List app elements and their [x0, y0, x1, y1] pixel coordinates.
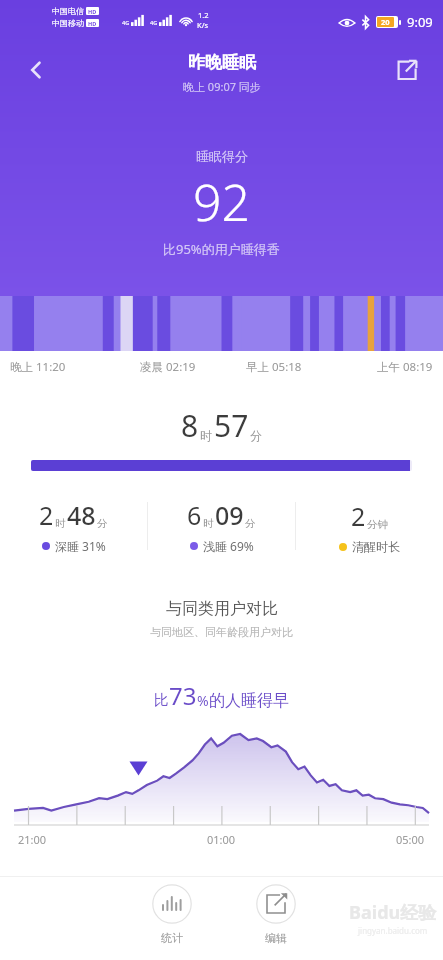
button[interactable]: Share	[385, 48, 429, 92]
staticText: 92	[193, 168, 251, 236]
staticText: 57	[214, 405, 249, 446]
staticText: 统计	[161, 931, 183, 945]
staticText: 4G	[150, 19, 158, 26]
staticText: Baidu经验	[349, 900, 437, 925]
staticText: 中国移动	[52, 18, 84, 28]
staticText: %	[197, 691, 209, 710]
staticText: 8	[181, 405, 199, 446]
staticText: 4G	[122, 19, 130, 26]
button[interactable]: Back	[14, 48, 58, 92]
staticText: 凌晨 02:19	[140, 359, 196, 375]
staticText: 比	[154, 691, 169, 710]
staticText: 清醒时长	[352, 539, 400, 554]
staticText: 深睡 31%	[55, 538, 106, 554]
staticText: 时	[203, 517, 214, 530]
staticText: 分	[97, 517, 108, 530]
staticText: 晚上 09:07 同步	[183, 79, 261, 94]
staticText: HD	[88, 8, 97, 15]
staticText: 6	[187, 498, 202, 532]
staticText: 分钟	[367, 518, 388, 531]
staticText: 上午 08:19	[377, 359, 433, 375]
staticText: 21:00	[18, 832, 47, 847]
staticText: 48	[67, 498, 96, 532]
staticText: 睡眠得分	[196, 148, 248, 164]
staticText: 与同地区、同年龄段用户对比	[150, 625, 293, 639]
staticText: K/s	[197, 20, 209, 30]
staticText: 比95%的用户睡得香	[163, 240, 280, 258]
staticText: 时	[55, 517, 66, 530]
staticText: 的人睡得早	[209, 691, 289, 711]
staticText: 09	[215, 498, 244, 532]
staticText: 73	[169, 679, 197, 712]
staticText: jingyan.baidu.com	[358, 925, 428, 936]
staticText: 编辑	[265, 931, 287, 945]
staticText: 05:00	[396, 832, 425, 847]
staticText: 01:00	[207, 832, 236, 847]
button[interactable]: 统计	[140, 884, 204, 945]
staticText: 2	[39, 498, 54, 532]
staticText: 1.2	[198, 10, 209, 20]
button[interactable]: 编辑	[244, 884, 308, 945]
staticText: 分	[250, 428, 262, 443]
staticText: HD	[88, 20, 97, 27]
staticText: 浅睡 69%	[203, 538, 254, 554]
staticText: 时	[200, 428, 212, 443]
staticText: 分	[245, 517, 256, 530]
staticText: 与同类用户对比	[166, 599, 278, 619]
staticText: 9:09	[407, 13, 433, 31]
staticText: 2	[351, 499, 366, 533]
staticText: 早上 05:18	[246, 359, 302, 375]
staticText: 晚上 11:20	[10, 359, 66, 375]
staticText: 中国电信	[52, 6, 84, 16]
staticText: 昨晚睡眠	[188, 52, 256, 73]
staticText: 20	[381, 17, 390, 27]
